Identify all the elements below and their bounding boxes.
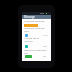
staticText: Mon <box>43 45 50 47</box>
staticText: A single line of message text <box>24 37 47 40</box>
staticText: Mon 11:02 <box>24 52 32 55</box>
staticText: Yesterday 4:10 <box>24 40 35 43</box>
staticText: Messages <box>24 15 36 19</box>
staticText: Unlimited voice and data plans <box>24 27 47 30</box>
button[interactable]: Conversation avatar <box>25 34 28 37</box>
staticText: Important notification detail <box>24 49 47 52</box>
staticText: Today 9:41 <box>24 30 33 33</box>
button[interactable]: Conversation avatar <box>25 45 28 48</box>
staticText: 10:15 <box>43 34 50 36</box>
button[interactable]: Call back <box>25 55 32 58</box>
button[interactable] <box>22 15 51 19</box>
staticText: Sun <box>43 55 50 57</box>
staticText: Unlimited voice and data plans <box>24 20 47 23</box>
